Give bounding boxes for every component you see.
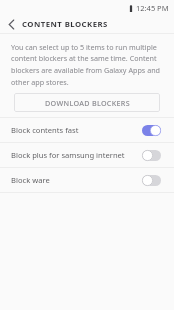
button[interactable]: Block ware bbox=[0, 168, 174, 192]
button[interactable]: DOWNLOAD BLOCKERS bbox=[14, 93, 160, 112]
button[interactable]: Block contents fast bbox=[0, 118, 174, 142]
staticText: Block plus for samsung internet bbox=[11, 150, 142, 160]
staticText: DOWNLOAD BLOCKERS bbox=[45, 98, 130, 108]
button[interactable]: Back bbox=[0, 16, 22, 33]
staticText: Block contents fast bbox=[11, 125, 142, 135]
staticText: CONTENT BLOCKERS bbox=[22, 19, 108, 30]
button[interactable]: Block plus for samsung internet bbox=[0, 143, 174, 167]
staticText: Block ware bbox=[11, 175, 142, 185]
staticText: You can select up to 5 items to run mult… bbox=[11, 42, 161, 87]
staticText: 12:45 PM bbox=[136, 3, 169, 13]
